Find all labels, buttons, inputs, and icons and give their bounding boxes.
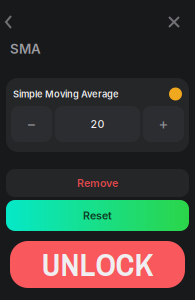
button[interactable]: Reset	[6, 200, 189, 231]
button[interactable]: Increase period	[143, 106, 184, 142]
button[interactable]: UNLOCK	[10, 241, 185, 288]
staticText: Remove	[77, 176, 118, 189]
button[interactable]: Decrease period	[11, 106, 52, 142]
button[interactable]: Close	[158, 11, 195, 33]
staticText: +	[158, 115, 168, 133]
staticText: 20	[90, 117, 104, 130]
staticText: UNLOCK	[41, 243, 153, 286]
button[interactable]: 20	[55, 106, 140, 142]
button[interactable]: Back	[0, 11, 32, 33]
staticText: SMA	[10, 41, 41, 57]
staticText: −	[26, 115, 36, 133]
staticText: Simple Moving Average	[13, 88, 119, 100]
button[interactable]: Remove	[6, 169, 189, 197]
staticText: Reset	[83, 209, 112, 222]
